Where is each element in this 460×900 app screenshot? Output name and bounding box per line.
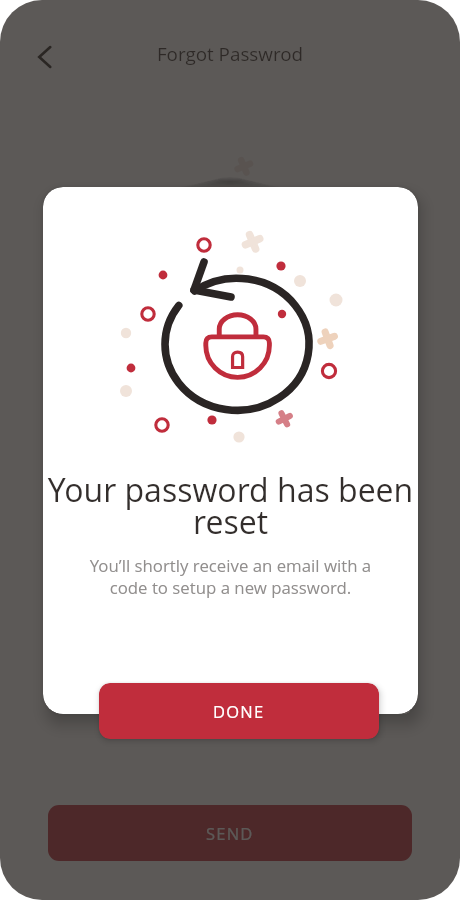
staticText: SEND — [206, 822, 254, 844]
button[interactable]: DONE — [99, 683, 379, 739]
button[interactable]: SEND — [48, 805, 412, 861]
staticText: Your password has been reset — [44, 468, 417, 543]
staticText: DONE — [213, 700, 265, 722]
staticText: You’ll shortly receive an email with a c… — [88, 554, 373, 599]
button[interactable]: Back — [23, 35, 67, 79]
staticText: Forgot Passwrod — [0, 41, 460, 67]
